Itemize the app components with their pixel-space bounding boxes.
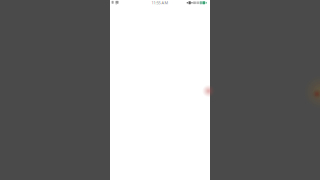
- staticText: 11:55 AM: [151, 0, 168, 5]
